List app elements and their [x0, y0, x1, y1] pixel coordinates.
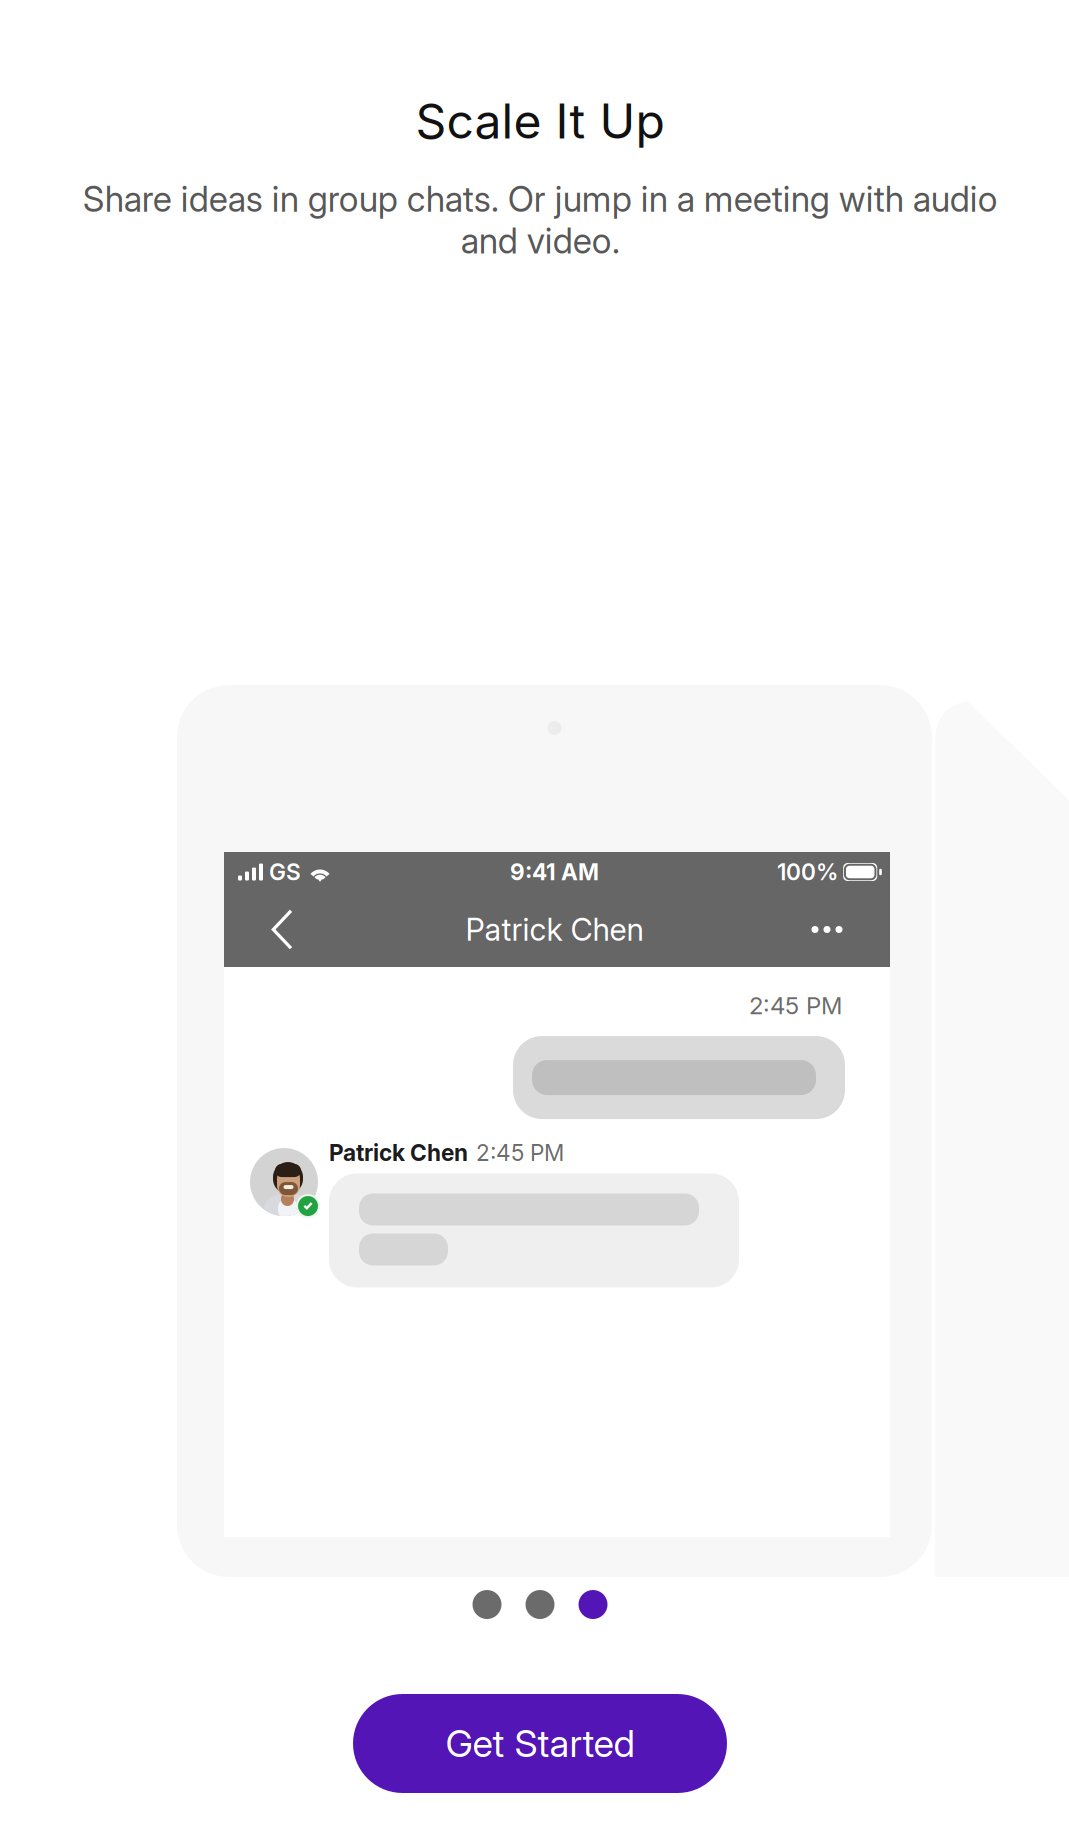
button[interactable]: Back — [244, 899, 320, 959]
staticText: Scale It Up — [415, 92, 664, 150]
staticText: Patrick Chen — [465, 911, 643, 948]
staticText: GS — [269, 858, 301, 886]
staticText: 100% — [777, 858, 838, 886]
staticText: Get Started — [445, 1721, 634, 1766]
button[interactable]: More options — [789, 899, 865, 959]
staticText: Patrick Chen — [329, 1139, 468, 1166]
staticText: 2:45 PM — [476, 1139, 564, 1166]
staticText: 9:41 AM — [510, 858, 599, 886]
staticText: 2:45 PM — [749, 991, 842, 1020]
staticText: Share ideas in group chats. Or jump in a… — [82, 178, 997, 262]
button[interactable]: Get Started — [353, 1694, 727, 1793]
